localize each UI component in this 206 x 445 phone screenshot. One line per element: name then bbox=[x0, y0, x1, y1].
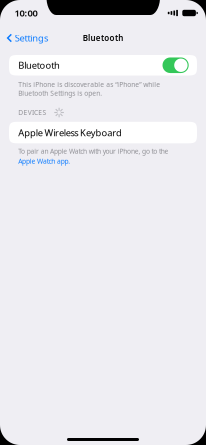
staticText: Bluetooth bbox=[18, 59, 60, 71]
button[interactable]: Apple Wireless Keyboard bbox=[9, 122, 197, 143]
button[interactable]: Settings bbox=[0, 32, 54, 44]
staticText: Settings bbox=[15, 32, 48, 44]
staticText: This iPhone is discoverable as “iPhone” … bbox=[18, 80, 160, 98]
staticText: DEVICES bbox=[18, 108, 46, 117]
button[interactable]: Apple Watch app. bbox=[18, 157, 70, 166]
staticText: 10:00 bbox=[14, 7, 37, 19]
staticText: To pair an Apple Watch with your iPhone,… bbox=[18, 147, 168, 156]
staticText: Bluetooth bbox=[83, 33, 123, 43]
staticText: Apple Wireless Keyboard bbox=[18, 126, 122, 139]
staticText: Apple Watch app. bbox=[18, 157, 70, 166]
button[interactable]: Bluetooth bbox=[9, 55, 197, 75]
